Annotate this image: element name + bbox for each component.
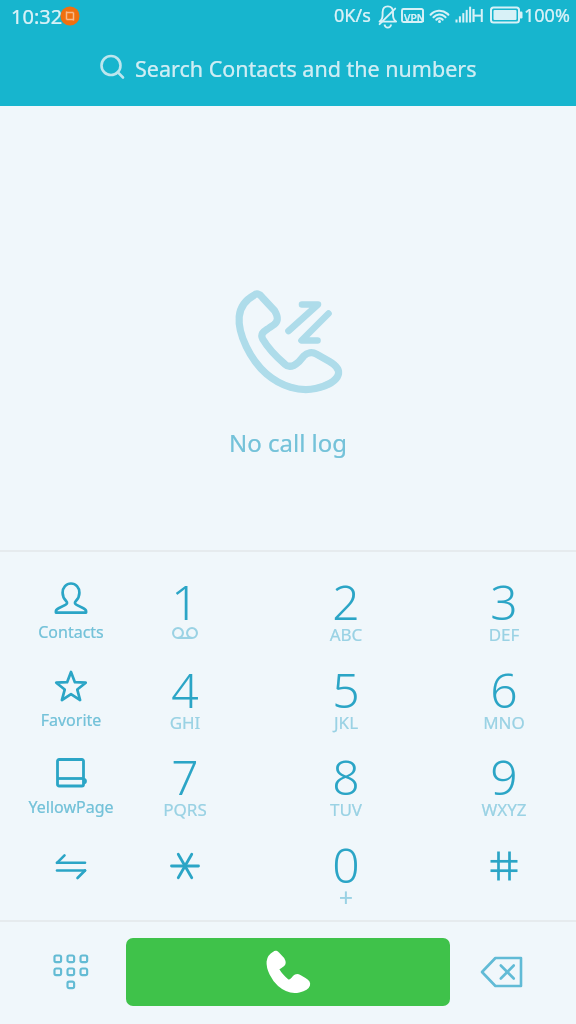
staticText: TUV	[276, 798, 416, 821]
button[interactable]: Call transfer	[1, 820, 141, 908]
button[interactable]: Favorite	[1, 645, 141, 733]
button[interactable]: Backspace	[443, 919, 561, 1024]
button[interactable]: Star	[115, 820, 255, 908]
staticText: PQRS	[115, 798, 255, 821]
button[interactable]: Contacts	[1, 557, 141, 645]
staticText: 2	[276, 569, 416, 634]
staticText: ABC	[276, 623, 416, 646]
button[interactable]: 6	[434, 645, 574, 733]
staticText: 3	[434, 569, 574, 634]
staticText: VPN	[404, 11, 426, 25]
staticText: 7	[115, 744, 255, 809]
button[interactable]: 4	[115, 645, 255, 733]
staticText: 1	[115, 569, 255, 634]
button[interactable]: 1	[115, 557, 255, 645]
button[interactable]: YellowPage	[1, 732, 141, 820]
staticText: 8	[276, 744, 416, 809]
button[interactable]: Pound	[434, 820, 574, 908]
button[interactable]: Call	[126, 938, 450, 1006]
staticText: +	[276, 880, 416, 914]
button[interactable]: 8	[276, 732, 416, 820]
staticText: 0K/s	[334, 3, 371, 28]
staticText: 9	[434, 744, 574, 809]
staticText: Favorite	[1, 709, 141, 731]
button[interactable]: 0	[276, 820, 416, 908]
staticText: YellowPage	[1, 796, 141, 818]
button[interactable]: 3	[434, 557, 574, 645]
staticText: MNO	[434, 711, 574, 734]
staticText: Contacts	[1, 621, 141, 643]
staticText: 4	[115, 657, 255, 722]
staticText: WXYZ	[434, 798, 574, 821]
staticText: 0	[276, 832, 416, 897]
staticText: H	[471, 3, 485, 28]
staticText: 10:32	[11, 3, 63, 30]
button[interactable]: 7	[115, 732, 255, 820]
staticText: 100%	[524, 3, 570, 28]
staticText: Search Contacts and the numbers	[135, 54, 477, 83]
button[interactable]: Hide dialpad	[12, 919, 130, 1024]
button[interactable]: 2	[276, 557, 416, 645]
staticText: DEF	[434, 623, 574, 646]
staticText: 6	[434, 657, 574, 722]
staticText: JKL	[276, 711, 416, 734]
staticText: 5	[276, 657, 416, 722]
staticText: GHI	[115, 711, 255, 734]
button[interactable]: 9	[434, 732, 574, 820]
staticText: No call log	[0, 426, 576, 459]
button[interactable]: 5	[276, 645, 416, 733]
button[interactable]: Search Contacts and the numbers	[0, 44, 576, 92]
